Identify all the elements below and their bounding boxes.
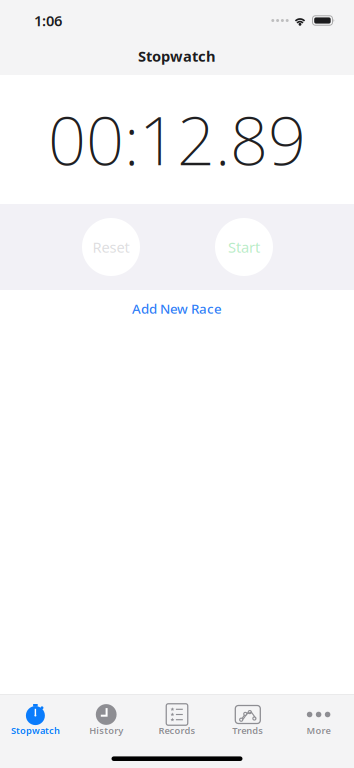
button[interactable]: Records [142, 694, 212, 739]
staticText: History [89, 724, 123, 737]
staticText: More [307, 724, 331, 737]
staticText: Stopwatch [11, 724, 60, 737]
staticText: Add New Race [132, 300, 222, 317]
staticText: Start [228, 237, 260, 257]
button[interactable]: Add New Race [0, 290, 354, 327]
button[interactable]: Trends [212, 694, 283, 739]
button[interactable]: Stopwatch [0, 694, 71, 739]
button[interactable]: History [71, 694, 142, 739]
staticText: Records [158, 724, 195, 737]
staticText: Trends [232, 724, 263, 737]
staticText: 00:12.89 [48, 95, 306, 184]
staticText: Stopwatch [138, 46, 216, 66]
staticText: 1:06 [34, 11, 62, 30]
button[interactable]: Reset [82, 218, 140, 276]
button[interactable]: Start [215, 218, 273, 276]
staticText: Reset [92, 237, 129, 257]
button[interactable]: More [283, 694, 354, 739]
